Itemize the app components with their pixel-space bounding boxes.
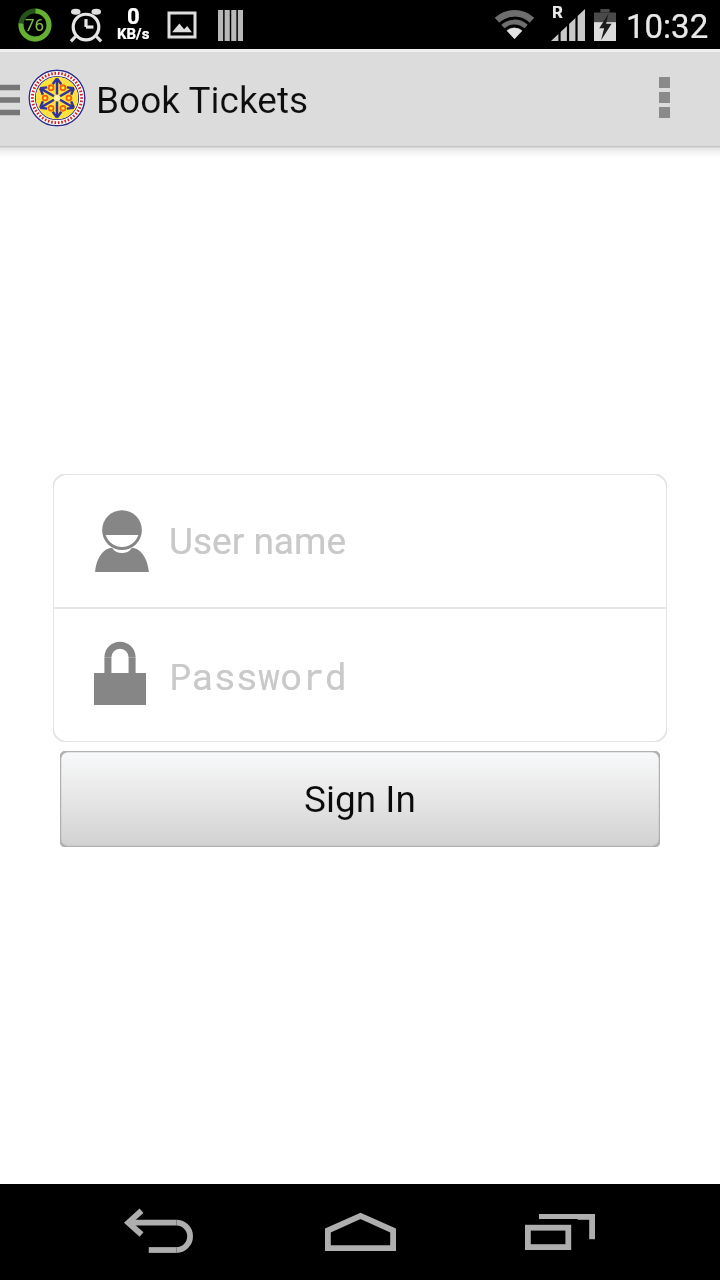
staticText: 76 [25, 15, 45, 35]
staticText: Sign In [304, 778, 416, 821]
button[interactable]: User name [53, 474, 667, 608]
staticText: Book Tickets [96, 79, 309, 122]
button[interactable]: Home [260, 1184, 460, 1280]
staticText: User name [169, 520, 347, 563]
button[interactable]: Sign In [60, 751, 660, 847]
staticText: KB/s [117, 25, 150, 43]
staticText: Password [169, 651, 347, 700]
button[interactable]: Open navigation drawer [0, 49, 20, 146]
staticText: 10:32 [626, 7, 709, 46]
staticText: 0 [127, 4, 140, 30]
button[interactable]: Back [60, 1184, 260, 1280]
button[interactable]: Recent apps [460, 1184, 660, 1280]
button[interactable]: More options [659, 49, 720, 146]
staticText: R [552, 2, 563, 22]
button[interactable]: Password [53, 608, 667, 742]
